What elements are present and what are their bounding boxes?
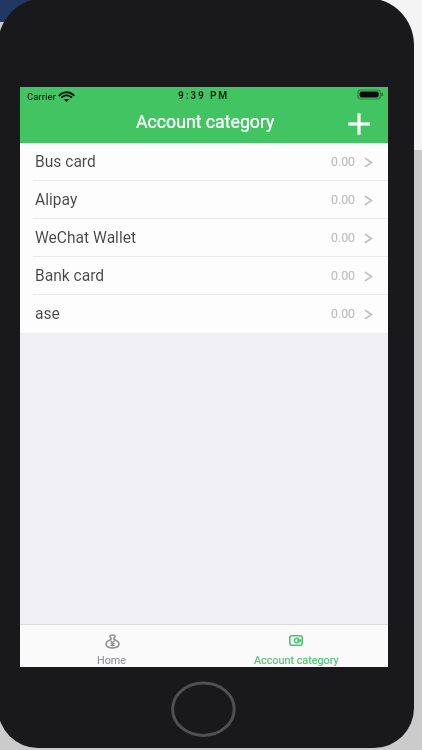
button[interactable]: WeChat Wallet <box>20 219 388 257</box>
button[interactable]: Bus card <box>20 143 388 181</box>
button[interactable]: ase <box>20 295 388 333</box>
staticText: WeChat Wallet <box>35 229 137 247</box>
button[interactable]: Alipay <box>20 181 388 219</box>
staticText: Alipay <box>35 191 78 209</box>
staticText: 0.00 <box>331 269 355 283</box>
staticText: 0.00 <box>331 193 355 207</box>
staticText: 0.00 <box>331 307 355 321</box>
staticText: Bank card <box>35 267 105 285</box>
staticText: Carrier <box>27 91 56 102</box>
staticText: Bus card <box>35 153 96 171</box>
staticText: Account category <box>136 112 275 133</box>
button[interactable]: Home <box>20 625 204 667</box>
staticText: 0.00 <box>331 155 355 169</box>
staticText: ase <box>35 305 60 323</box>
staticText: Home <box>97 654 127 667</box>
button[interactable]: Bank card <box>20 257 388 295</box>
staticText: 9:39 PM <box>178 90 230 102</box>
staticText: 0.00 <box>331 231 355 245</box>
button[interactable]: Account category <box>204 625 388 667</box>
button[interactable]: Add <box>348 113 370 135</box>
staticText: Account category <box>254 654 339 667</box>
